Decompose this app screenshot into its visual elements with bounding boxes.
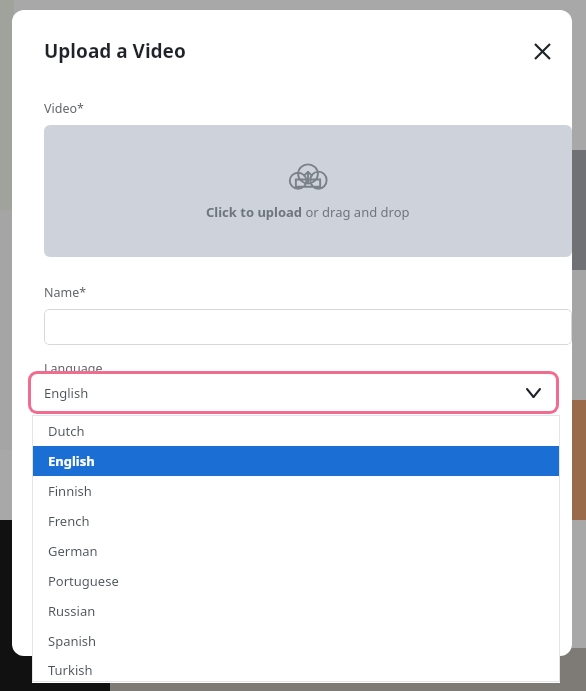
staticText: Portuguese [48,572,119,590]
staticText: English [48,452,95,470]
staticText: Dutch [48,422,85,440]
staticText: Click to upload or drag and drop [206,203,410,221]
staticText: Spanish [48,632,97,650]
button[interactable]: English [32,446,560,476]
button[interactable]: Turkish [32,656,560,683]
button[interactable]: Close [522,31,562,71]
button[interactable]: Finnish [32,476,560,506]
button[interactable]: French [32,506,560,536]
staticText: Turkish [48,661,93,679]
staticText: Finnish [48,482,92,500]
staticText: Name* [44,284,87,301]
button[interactable]: Click to upload or drag and drop [44,125,572,257]
staticText: German [48,542,98,560]
staticText: Video* [44,100,84,117]
staticText: English [44,384,89,402]
staticText: Russian [48,602,96,620]
staticText: Upload a Video [44,38,186,64]
staticText: French [48,512,90,530]
staticText: Language [44,360,103,377]
button[interactable]: Spanish [32,626,560,656]
button[interactable]: Portuguese [32,566,560,596]
button[interactable]: Dutch [32,416,560,446]
button[interactable]: German [32,536,560,566]
button[interactable]: Language select, English [28,371,559,414]
button[interactable] [44,309,572,345]
button[interactable]: Russian [32,596,560,626]
